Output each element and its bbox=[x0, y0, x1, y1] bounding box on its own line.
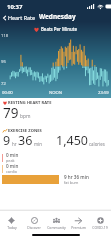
button[interactable]: Premium bbox=[67, 215, 89, 232]
staticText: bpm bbox=[20, 113, 31, 120]
staticText: cardio bbox=[6, 169, 18, 174]
button[interactable]: Today bbox=[0, 215, 23, 232]
staticText: 36 bbox=[18, 132, 33, 149]
button[interactable]: 9 hr 36 min bbox=[0, 174, 111, 185]
staticText: 9 bbox=[3, 132, 11, 149]
staticText: Community bbox=[47, 225, 66, 230]
staticText: EXERCISE ZONES bbox=[8, 128, 42, 133]
staticText: Discover bbox=[27, 225, 41, 230]
staticText: fat burn bbox=[64, 180, 79, 185]
staticText: hr bbox=[12, 141, 17, 147]
staticText: 79 bbox=[3, 104, 19, 122]
button[interactable]: 0 min bbox=[0, 163, 111, 174]
staticText: 9 hr 36 min bbox=[64, 174, 89, 180]
button[interactable]: Community bbox=[45, 215, 67, 232]
button[interactable]: COVID-19 bbox=[89, 215, 111, 232]
button[interactable]: RESTING HEART RATE bbox=[0, 98, 111, 123]
staticText: Premium bbox=[71, 225, 86, 230]
staticText: 10:37 bbox=[7, 3, 23, 11]
staticText: calories bbox=[89, 141, 105, 147]
button[interactable]: EXERCISE ZONES bbox=[0, 128, 111, 150]
staticText: 0 min bbox=[6, 152, 19, 158]
button[interactable]: Heart Rate bbox=[0, 12, 39, 25]
staticText: Beats Per Minute bbox=[41, 26, 77, 32]
staticText: 0 min bbox=[6, 163, 19, 169]
staticText: 118 bbox=[1, 33, 9, 39]
staticText: 23:59 bbox=[98, 90, 109, 96]
staticText: COVID-19 bbox=[92, 225, 108, 230]
staticText: 95 bbox=[1, 59, 6, 65]
button[interactable]: 0 min bbox=[0, 152, 111, 163]
staticText: 1,450 bbox=[56, 132, 88, 149]
staticText: Wednesday bbox=[39, 12, 76, 21]
button[interactable]: Discover bbox=[23, 215, 45, 232]
staticText: min bbox=[34, 141, 42, 147]
staticText: 72 bbox=[1, 81, 6, 87]
staticText: peak bbox=[6, 158, 15, 163]
staticText: RESTING HEART RATE bbox=[8, 100, 52, 105]
staticText: Heart Rate bbox=[8, 14, 35, 21]
staticText: Today bbox=[7, 225, 17, 230]
staticText: NOON bbox=[49, 90, 62, 96]
staticText: 00:00 bbox=[2, 90, 13, 96]
